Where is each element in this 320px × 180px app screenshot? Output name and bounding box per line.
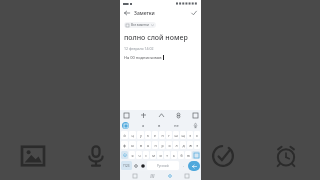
button[interactable]: б xyxy=(178,151,184,159)
button[interactable]: ш xyxy=(173,131,179,139)
button[interactable]: Keyboard tool 2 xyxy=(158,112,164,118)
staticText: ш xyxy=(174,133,178,138)
button[interactable]: х xyxy=(194,131,200,139)
staticText: На 00 подписчиков xyxy=(124,55,162,60)
button[interactable]: н xyxy=(159,131,165,139)
button[interactable]: Recents xyxy=(131,172,138,179)
button[interactable]: ж xyxy=(187,141,193,149)
staticText: б xyxy=(180,153,183,158)
button[interactable]: Заметки xyxy=(134,10,155,17)
button[interactable]: ы xyxy=(129,141,136,149)
staticText: ж xyxy=(189,143,192,148)
button[interactable]: э xyxy=(194,141,200,149)
button[interactable]: Emoji xyxy=(122,122,129,129)
button[interactable]: Voice typing xyxy=(192,122,199,129)
staticText: т xyxy=(166,153,168,158)
staticText: д xyxy=(182,143,185,148)
button[interactable]: Keyboard tool 0 xyxy=(123,112,129,118)
button[interactable]: Все заметки xyxy=(126,22,154,28)
button[interactable]: г xyxy=(166,131,172,139)
staticText: Заметки xyxy=(134,10,155,17)
button[interactable]: щ xyxy=(180,131,186,139)
staticText: и xyxy=(159,153,162,158)
button[interactable]: Keyboard tool 3 xyxy=(175,112,181,118)
staticText: я xyxy=(142,123,145,128)
button[interactable]: ф xyxy=(121,141,128,149)
button[interactable]: а xyxy=(145,141,151,149)
button[interactable]: ?123 xyxy=(121,161,132,170)
button[interactable]: е xyxy=(152,131,158,139)
staticText: р xyxy=(161,143,164,148)
staticText: Русский xyxy=(157,164,169,168)
staticText: 12 февраля 14:02 xyxy=(124,46,154,51)
staticText: е xyxy=(154,133,156,138)
button[interactable]: м xyxy=(150,151,156,159)
button[interactable]: л xyxy=(173,141,179,149)
staticText: г xyxy=(168,133,170,138)
staticText: в xyxy=(158,123,161,128)
button[interactable]: Reminder xyxy=(275,145,297,167)
staticText: полно слой номер xyxy=(124,33,188,43)
staticText: э xyxy=(196,143,198,148)
button[interactable]: у xyxy=(137,131,144,139)
button[interactable]: Enter xyxy=(188,161,200,171)
staticText: ю xyxy=(187,153,190,158)
button[interactable]: я xyxy=(129,151,135,159)
button[interactable]: к xyxy=(145,131,151,139)
button[interactable]: в xyxy=(158,123,161,128)
staticText: щ xyxy=(181,133,185,138)
button[interactable]: т xyxy=(164,151,170,159)
staticText: ?123 xyxy=(123,164,130,168)
button[interactable]: и xyxy=(157,151,163,159)
button[interactable]: . xyxy=(180,161,187,170)
button[interactable]: ь xyxy=(171,151,177,159)
staticText: м xyxy=(152,153,155,158)
button[interactable]: Русский xyxy=(147,161,179,170)
button[interactable]: ц xyxy=(129,131,136,139)
button[interactable]: я xyxy=(142,123,145,128)
button[interactable]: не xyxy=(174,123,179,128)
button[interactable]: Change language xyxy=(140,161,146,170)
staticText: а xyxy=(147,143,149,148)
button[interactable]: Shift xyxy=(121,151,128,159)
staticText: не xyxy=(174,123,179,128)
staticText: у xyxy=(140,133,142,138)
button[interactable]: ч xyxy=(136,151,142,159)
staticText: н xyxy=(161,133,164,138)
staticText: п xyxy=(154,143,157,148)
staticText: ц xyxy=(131,133,134,138)
button[interactable]: в xyxy=(137,141,144,149)
button[interactable]: з xyxy=(187,131,193,139)
button[interactable]: Checklist xyxy=(212,145,234,167)
staticText: з xyxy=(189,133,191,138)
button[interactable]: Keyboard hide xyxy=(166,172,173,179)
staticText: ы xyxy=(131,143,134,148)
button[interactable]: д xyxy=(180,141,186,149)
button[interactable]: Voice input xyxy=(85,145,107,167)
button[interactable]: Keyboard tool 4 xyxy=(192,112,198,118)
staticText: й xyxy=(123,133,126,138)
staticText: х xyxy=(196,133,198,138)
button[interactable]: Back xyxy=(123,9,131,17)
button[interactable]: Backspace xyxy=(192,151,200,159)
staticText: ф xyxy=(123,143,126,148)
staticText: ь xyxy=(173,153,175,158)
staticText: Все заметки xyxy=(131,23,149,27)
button[interactable]: й xyxy=(121,131,128,139)
button[interactable]: Back xyxy=(183,172,190,179)
button[interactable]: Home xyxy=(148,172,155,179)
staticText: с xyxy=(145,153,147,158)
button[interactable]: ю xyxy=(185,151,191,159)
button[interactable]: Keyboard tool 1 xyxy=(140,112,146,118)
staticText: . xyxy=(183,163,185,168)
button[interactable]: Save xyxy=(190,9,198,17)
button[interactable]: Settings xyxy=(133,161,139,170)
button[interactable]: о xyxy=(166,141,172,149)
button[interactable]: с xyxy=(143,151,149,159)
staticText: о xyxy=(168,143,171,148)
button[interactable]: Insert image xyxy=(22,145,44,167)
button[interactable]: п xyxy=(152,141,158,149)
button[interactable]: р xyxy=(159,141,165,149)
staticText: ч xyxy=(138,153,141,158)
staticText: я xyxy=(131,153,134,158)
